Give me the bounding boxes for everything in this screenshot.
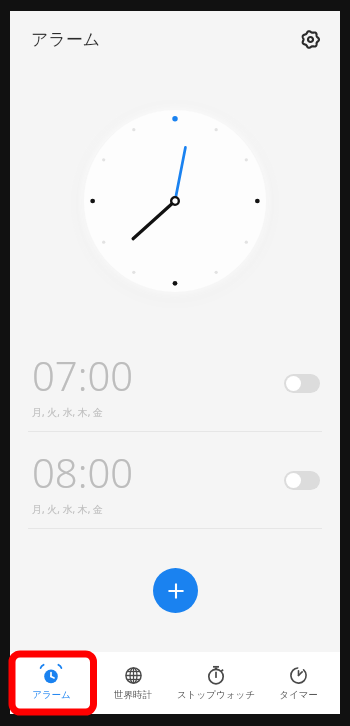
staticText: 世界時計 [114,689,152,701]
staticText: タイマー [279,689,318,701]
button[interactable]: ストップウォッチ [174,652,257,714]
staticText: アラーム [32,689,71,701]
button[interactable]: アラーム [10,652,92,714]
button[interactable]: タイマー [257,652,340,714]
staticText: 月, 火, 水, 木, 金 [32,405,104,419]
button[interactable]: Alarm toggle [284,471,320,490]
button[interactable]: 08:00 [10,432,340,528]
staticText: 08:00 [32,445,134,499]
button[interactable]: Settings [292,21,328,57]
button[interactable]: 07:00 [10,335,340,431]
button[interactable]: Alarm toggle [284,374,320,393]
staticText: ストップウォッチ [177,689,255,701]
button[interactable]: 世界時計 [92,652,174,714]
staticText: 07:00 [32,348,134,402]
staticText: アラーム [31,29,101,50]
staticText: 月, 火, 水, 木, 金 [32,502,104,516]
button[interactable]: Add alarm [153,568,198,613]
